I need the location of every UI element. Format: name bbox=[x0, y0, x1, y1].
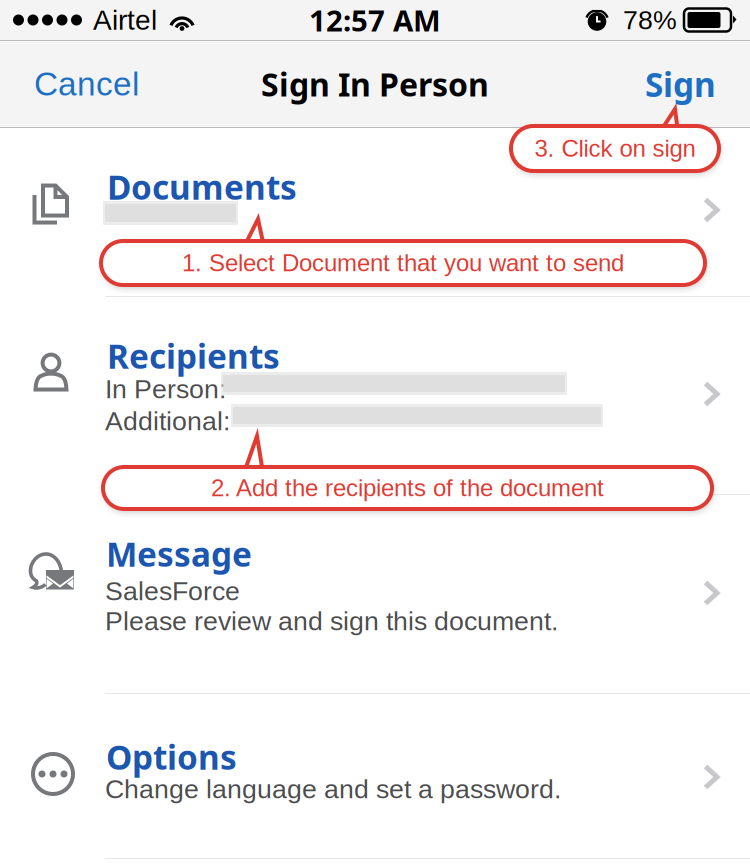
staticText: Sign In Person bbox=[261, 62, 489, 106]
staticText: 3. Click on sign bbox=[534, 135, 695, 162]
staticText: Options bbox=[106, 734, 237, 779]
staticText: 1. Select Document that you want to send bbox=[182, 250, 624, 276]
button[interactable]: Sign bbox=[629, 43, 732, 125]
staticText: SalesForce bbox=[105, 576, 240, 606]
staticText: Please review and sign this document. bbox=[105, 606, 558, 636]
button[interactable]: Cancel bbox=[18, 47, 155, 121]
staticText: Change language and set a password. bbox=[105, 774, 561, 804]
staticText: Message bbox=[106, 531, 252, 576]
staticText: Documents bbox=[107, 164, 297, 209]
staticText: Additional: bbox=[105, 406, 230, 436]
staticText: Recipients bbox=[107, 333, 280, 378]
staticText: Sign bbox=[645, 61, 716, 107]
button[interactable]: Documents bbox=[0, 128, 750, 296]
staticText: 12:57 AM bbox=[309, 0, 441, 40]
staticText: 78% bbox=[623, 5, 677, 35]
staticText: In Person: bbox=[105, 374, 226, 404]
staticText: 2. Add the recipients of the document bbox=[211, 475, 604, 501]
button[interactable]: Message bbox=[0, 520, 750, 685]
button[interactable]: Options bbox=[0, 703, 750, 848]
staticText: Cancel bbox=[34, 65, 139, 103]
button[interactable]: Recipients bbox=[0, 310, 750, 486]
staticText: Airtel bbox=[93, 4, 157, 36]
